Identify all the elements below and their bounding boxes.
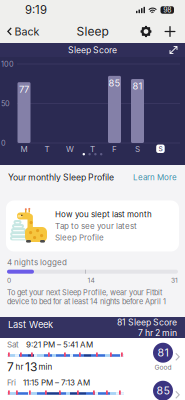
staticText: 81 Sleep Score	[117, 317, 177, 327]
staticText: hr	[15, 362, 23, 372]
button[interactable]: Expand chart	[169, 45, 178, 54]
staticText: 100	[1, 60, 14, 68]
staticText: M	[20, 144, 27, 154]
staticText: min	[38, 362, 52, 372]
staticText: 85	[108, 77, 120, 89]
staticText: 50	[1, 99, 10, 108]
staticText: 81	[157, 346, 168, 359]
staticText: 85	[156, 384, 169, 397]
staticText: Fri	[7, 378, 16, 387]
button[interactable]: Settings	[134, 20, 158, 43]
staticText: Sleep	[76, 24, 108, 39]
staticText: 7	[7, 360, 14, 374]
staticText: 11:15 PM – 7:13 AM	[23, 378, 90, 387]
staticText: Learn More	[133, 172, 177, 182]
button[interactable]: Sat	[0, 338, 185, 376]
staticText: 13	[25, 360, 37, 374]
staticText: To get your next Sleep Profile, wear you…	[7, 288, 166, 306]
staticText: Sleep Profile	[55, 233, 104, 242]
staticText: How you slept last month	[55, 209, 152, 219]
staticText: 0	[7, 276, 11, 284]
staticText: T	[44, 144, 49, 154]
staticText: Back	[14, 25, 39, 38]
staticText: S	[135, 144, 140, 154]
staticText: Good	[154, 363, 171, 371]
staticText: 14	[87, 276, 94, 284]
staticText: 0	[1, 139, 6, 147]
staticText: 7 hr 2 min	[138, 327, 177, 338]
staticText: 98	[163, 6, 171, 14]
staticText: Your monthly Sleep Profile	[8, 172, 114, 182]
staticText: S	[158, 145, 162, 153]
button[interactable]: Fri	[0, 376, 185, 400]
staticText: Sat	[7, 340, 19, 349]
staticText: Sleep Score	[68, 45, 117, 55]
staticText: 9:21 PM – 5:41 AM	[26, 340, 93, 349]
button[interactable]: Learn More	[133, 172, 177, 182]
staticText: 81	[132, 80, 142, 92]
staticText: T	[90, 144, 95, 154]
button[interactable]: Back	[0, 20, 45, 43]
staticText: Tap to see your latest	[55, 221, 137, 231]
button[interactable]: Add sleep log	[158, 20, 182, 43]
staticText: 9:19	[25, 3, 47, 17]
staticText: 77	[19, 84, 29, 95]
staticText: 4 nights logged	[7, 257, 67, 267]
staticText: 31	[171, 276, 178, 284]
staticText: Last Week	[8, 319, 53, 330]
staticText: F	[112, 144, 117, 154]
staticText: W	[66, 144, 74, 154]
